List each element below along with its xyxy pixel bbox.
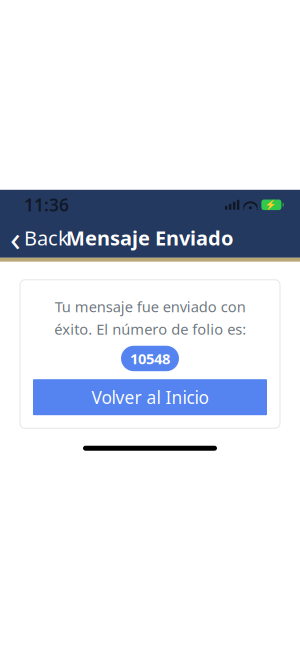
- staticText: Back: [24, 224, 69, 251]
- button[interactable]: ‹: [0, 220, 77, 256]
- staticText: Volver al Inicio: [91, 386, 208, 409]
- button[interactable]: Volver al Inicio: [33, 379, 267, 415]
- staticText: Tu mensaje fue enviado con éxito. El núm…: [54, 297, 246, 339]
- staticText: ⚡: [265, 199, 277, 210]
- staticText: ‹: [10, 215, 21, 261]
- staticText: 10548: [130, 349, 170, 368]
- staticText: Mensaje Enviado: [66, 224, 234, 251]
- staticText: 11:36: [24, 193, 69, 216]
